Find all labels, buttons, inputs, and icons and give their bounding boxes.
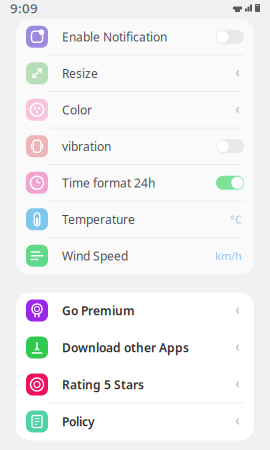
button[interactable]: Time format 24h xyxy=(16,165,254,201)
button[interactable]: Temperature xyxy=(16,201,254,238)
staticText: Rating 5 Stars xyxy=(62,376,144,392)
button[interactable]: Wind Speed xyxy=(16,238,254,274)
button[interactable]: Enable Notification xyxy=(16,19,254,55)
button[interactable]: Download other Apps xyxy=(16,329,254,366)
button[interactable]: Policy xyxy=(16,403,254,440)
staticText: km/h xyxy=(215,249,242,263)
button[interactable]: Rating 5 Stars xyxy=(16,366,254,403)
staticText: Download other Apps xyxy=(62,339,189,355)
staticText: Temperature xyxy=(62,211,135,227)
staticText: Policy xyxy=(62,413,95,429)
staticText: Enable Notification xyxy=(62,29,167,45)
staticText: Time format 24h xyxy=(62,175,155,191)
staticText: Resize xyxy=(62,65,98,81)
button[interactable]: Resize xyxy=(16,55,254,92)
staticText: Wind Speed xyxy=(62,248,128,264)
staticText: Go Premium xyxy=(62,302,135,318)
button[interactable]: Go Premium xyxy=(16,292,254,329)
staticText: Color xyxy=(62,102,92,118)
staticText: vibration xyxy=(62,138,111,154)
staticText: 9:09 xyxy=(10,0,38,17)
staticText: °C xyxy=(230,212,242,226)
button[interactable]: Color xyxy=(16,92,254,128)
button[interactable]: vibration xyxy=(16,128,254,165)
